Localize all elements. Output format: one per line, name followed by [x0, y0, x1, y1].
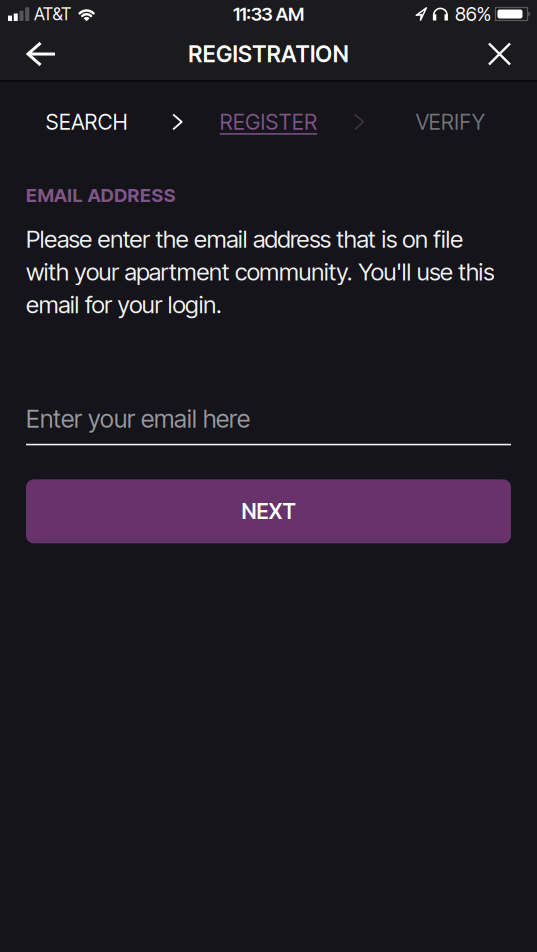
- staticText: 11:33 AM: [233, 3, 304, 25]
- button[interactable]: Close: [489, 28, 537, 79]
- staticText: REGISTRATION: [188, 40, 349, 68]
- staticText: EMAIL ADDRESS: [26, 184, 176, 206]
- button[interactable]: NEXT: [26, 479, 511, 543]
- staticText: Please enter the email address that is o…: [26, 224, 494, 319]
- staticText: Enter your email here: [26, 404, 250, 434]
- staticText: SEARCH: [46, 109, 128, 135]
- button[interactable]: Back: [0, 28, 55, 80]
- staticText: NEXT: [241, 498, 295, 524]
- staticText: 86%: [455, 2, 491, 26]
- button[interactable]: Enter your email here: [0, 404, 511, 445]
- staticText: AT&T: [34, 3, 71, 24]
- staticText: REGISTER: [220, 109, 317, 135]
- staticText: VERIFY: [416, 109, 485, 135]
